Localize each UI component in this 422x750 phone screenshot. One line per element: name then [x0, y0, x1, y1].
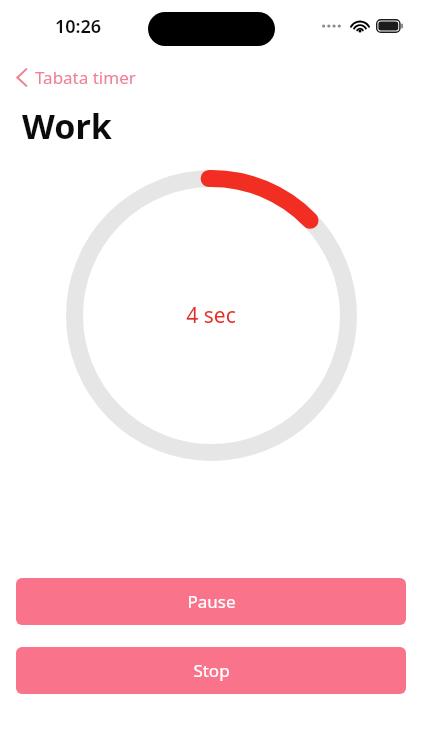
button[interactable]: Stop: [16, 647, 406, 694]
staticText: 10:26: [55, 14, 102, 39]
staticText: 4 sec: [186, 301, 236, 330]
button[interactable]: Tabata timer: [12, 62, 140, 93]
staticText: Stop: [193, 659, 230, 682]
staticText: Pause: [187, 590, 236, 613]
button[interactable]: Pause: [16, 578, 406, 625]
staticText: Tabata timer: [35, 66, 136, 89]
staticText: Work: [22, 103, 112, 149]
